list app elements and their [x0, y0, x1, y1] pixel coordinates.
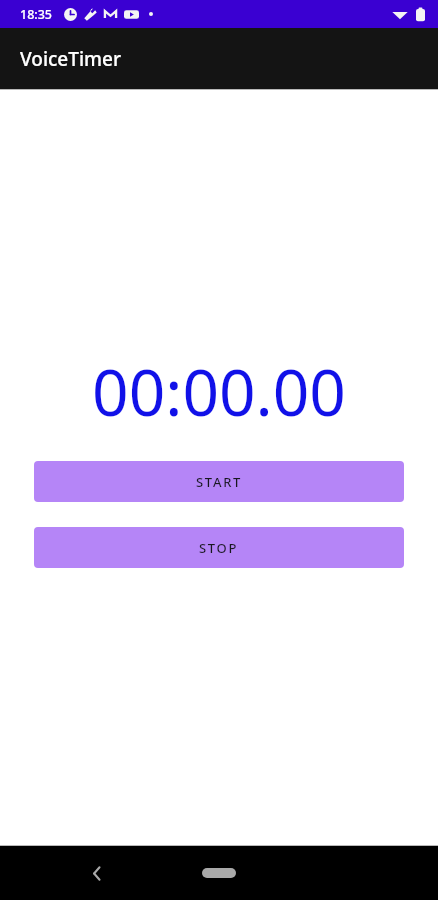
button[interactable]: STOP — [34, 527, 404, 568]
staticText: START — [196, 473, 243, 491]
staticText: 18:35 — [20, 6, 53, 23]
staticText: VoiceTimer — [20, 46, 122, 72]
staticText: STOP — [199, 539, 239, 557]
button[interactable]: Back — [77, 853, 117, 893]
button[interactable]: START — [34, 461, 404, 502]
button[interactable]: Home — [189, 857, 249, 889]
staticText: 00:00.00 — [92, 348, 346, 435]
